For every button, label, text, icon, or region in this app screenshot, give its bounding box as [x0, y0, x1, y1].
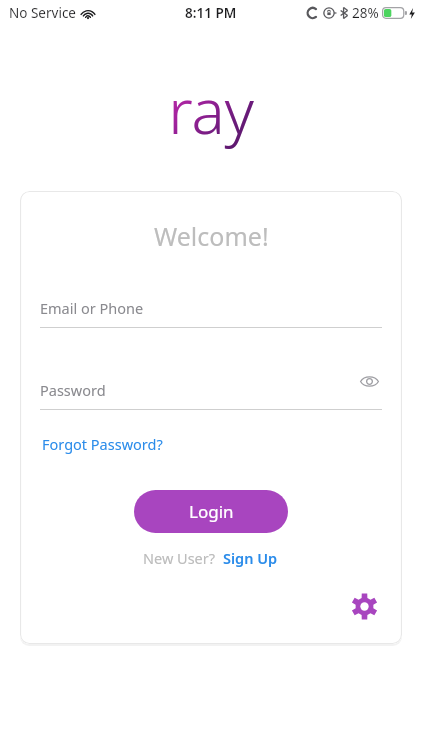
staticText: Welcome! — [154, 219, 269, 253]
staticText: Email or Phone — [40, 298, 144, 318]
staticText: Login — [189, 500, 234, 523]
staticText: 8:11 PM — [185, 4, 237, 22]
staticText: No Service — [9, 4, 76, 22]
button[interactable]: Settings — [347, 589, 381, 623]
button[interactable]: Login — [134, 490, 288, 533]
staticText: New User? — [143, 548, 216, 568]
staticText: ray — [168, 68, 254, 152]
staticText: 28% — [352, 4, 379, 22]
staticText: Password — [40, 380, 106, 400]
button[interactable]: Forgot Password? — [40, 431, 165, 457]
staticText: Forgot Password? — [42, 434, 163, 454]
staticText: Sign Up — [223, 548, 278, 568]
button[interactable]: Email or Phone — [20, 298, 402, 328]
button[interactable]: Show password — [356, 368, 382, 394]
button[interactable]: Sign Up — [221, 546, 280, 570]
button[interactable]: Password — [20, 374, 402, 410]
